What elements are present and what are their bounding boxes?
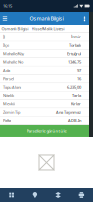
staticText: Pafta	[3, 118, 11, 123]
staticText: Parsel	[3, 76, 14, 81]
staticText: Torbalı	[69, 43, 81, 48]
staticText: 16	[77, 76, 81, 81]
staticText: 1346.75	[68, 59, 81, 65]
staticText: Ertuğrul	[67, 51, 81, 56]
staticText: İzmir	[71, 34, 81, 40]
staticText: Osmanlı Bilgisi	[29, 15, 63, 22]
button[interactable]: Print	[70, 188, 93, 202]
button[interactable]: More options	[80, 12, 89, 25]
staticText: ADB-In	[68, 118, 81, 123]
button[interactable]: Parsellerle görüntüle	[0, 125, 93, 137]
staticText: Tapu Alanı	[3, 84, 21, 90]
staticText: Tarla	[72, 93, 81, 98]
staticText: Nitelik	[3, 93, 14, 98]
staticText: Mahalle No	[3, 59, 23, 65]
staticText: 16:15	[3, 3, 12, 9]
staticText: İlçe	[3, 43, 9, 48]
button[interactable]: Hisse/Malik Listesi	[30, 25, 66, 32]
staticText: Kırlar	[71, 101, 81, 106]
staticText: Ana Taşınmaz	[56, 109, 81, 115]
staticText: 97	[77, 68, 81, 73]
button[interactable]: Layer list	[0, 188, 23, 202]
button[interactable]: Locate me	[23, 188, 46, 202]
staticText: Mevkii	[3, 101, 15, 106]
image	[38, 154, 54, 170]
staticText: Hisse/Malik Listesi	[31, 26, 64, 31]
staticText: Zemin Tip	[3, 109, 20, 115]
staticText: Parsellerle görüntüle	[26, 128, 66, 134]
staticText: Mahalle/Köy	[3, 51, 24, 56]
button[interactable]: Base maps	[46, 188, 70, 202]
staticText: İl	[3, 34, 5, 40]
staticText: Ada	[3, 68, 10, 73]
staticText: Osmanlı Bilgisi	[1, 26, 28, 31]
button[interactable]: Menu	[0, 12, 10, 25]
staticText: 6.235,00	[67, 84, 81, 90]
button[interactable]: Osmanlı Bilgisi	[0, 25, 30, 32]
